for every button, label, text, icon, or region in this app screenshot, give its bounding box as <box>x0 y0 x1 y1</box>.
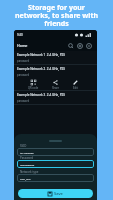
staticText: Edit <box>73 86 78 90</box>
staticText: Storage for your networks, to share with… <box>6 3 107 28</box>
button[interactable]: mypassword <box>17 160 94 168</box>
staticText: QR code <box>28 86 39 90</box>
staticText: 9:30 <box>17 33 23 37</box>
staticText: Share <box>52 86 59 90</box>
staticText: Password <box>20 156 34 160</box>
staticText: password <box>17 59 30 63</box>
staticText: Save <box>54 191 63 196</box>
staticText: My Network <box>20 151 34 154</box>
button[interactable]: Example Network 1 2.4 GHz, P2S <box>14 51 97 65</box>
button[interactable]: QR code <box>26 80 41 90</box>
staticText: Home <box>17 43 28 48</box>
button[interactable]: WPA_PSK <box>17 174 94 182</box>
staticText: Example Network 1 2.4 GHz, P2S <box>17 53 66 57</box>
button[interactable]: More options <box>84 41 93 50</box>
staticText: Network type <box>20 170 39 174</box>
button[interactable]: Share <box>50 80 61 90</box>
button[interactable]: Edit <box>71 80 80 90</box>
button[interactable]: Add <box>75 41 84 50</box>
staticText: SSID <box>20 144 27 148</box>
staticText: mypassword <box>20 163 35 166</box>
button[interactable]: Example Network 3 2.4 GHz, P2S <box>14 91 97 105</box>
staticText: password <box>17 99 30 103</box>
staticText: WPA_PSK <box>20 177 31 180</box>
button[interactable]: Example Network 2 2.4 GHz, P2S <box>14 65 97 91</box>
button[interactable]: My Network <box>17 148 94 156</box>
staticText: Example Network 2 2.4 GHz, P2S <box>17 67 66 71</box>
button[interactable]: Search <box>66 41 75 50</box>
button[interactable]: Save <box>18 189 93 198</box>
staticText: Example Network 3 2.4 GHz, P2S <box>17 93 66 97</box>
staticText: password <box>17 73 30 77</box>
